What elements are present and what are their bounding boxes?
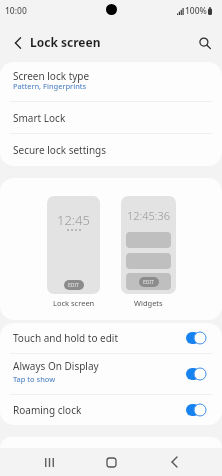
staticText: 100%	[185, 5, 207, 17]
staticText: EDIT	[68, 282, 80, 289]
staticText: 12:45:36	[127, 208, 171, 223]
button[interactable]: Search	[192, 30, 218, 56]
staticText: Pattern, Fingerprints	[13, 81, 87, 91]
staticText: Widgets	[134, 298, 163, 308]
button[interactable]: Roaming clock	[0, 395, 222, 425]
button[interactable]: EDIT	[139, 277, 159, 287]
button[interactable]: Home	[97, 448, 125, 476]
button[interactable]: Screen lock type	[0, 62, 222, 101]
button[interactable]: Toggle	[186, 331, 207, 345]
staticText: Secure lock settings	[13, 143, 106, 157]
button[interactable]: Always On Display	[0, 354, 222, 394]
button[interactable]: Lock screen preview	[47, 196, 100, 294]
staticText: 12:45	[57, 211, 90, 229]
staticText: Lock screen	[30, 34, 101, 50]
button[interactable]: Toggle	[186, 403, 207, 417]
button[interactable]: EDIT	[64, 280, 84, 290]
staticText: Always On Display	[13, 359, 99, 373]
button[interactable]: Recents	[35, 448, 63, 476]
staticText: Roaming clock	[13, 403, 82, 417]
button[interactable]: Smart Lock	[0, 102, 222, 133]
staticText: EDIT	[143, 279, 155, 286]
staticText: Lock screen	[53, 298, 95, 308]
button[interactable]: Touch and hold to edit	[0, 323, 222, 353]
button[interactable]: Back	[160, 448, 188, 476]
button[interactable]: Toggle	[186, 367, 207, 381]
staticText: 10:00	[5, 5, 27, 17]
button[interactable]: Back	[5, 30, 31, 56]
button[interactable]: Widgets preview	[121, 196, 176, 294]
staticText: Tap to show	[13, 374, 56, 384]
button[interactable]: Secure lock settings	[0, 134, 222, 166]
staticText: Touch and hold to edit	[13, 331, 119, 345]
staticText: Screen lock type	[13, 69, 90, 83]
staticText: Smart Lock	[13, 111, 66, 125]
